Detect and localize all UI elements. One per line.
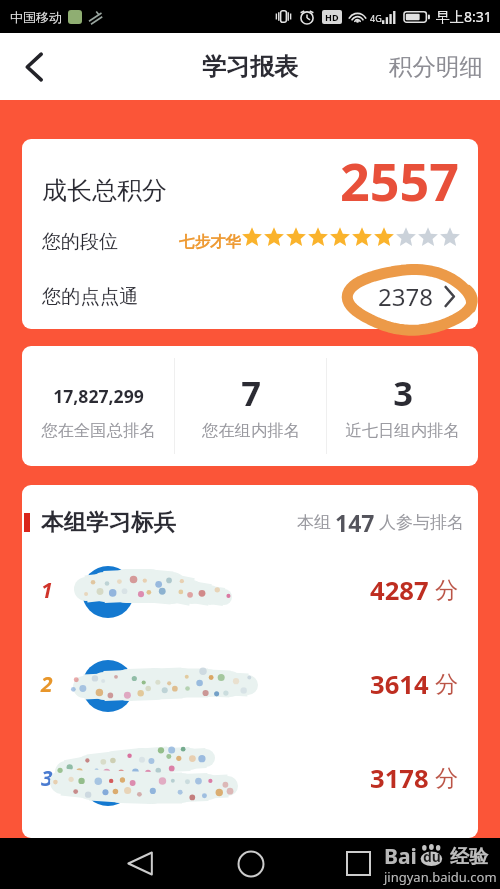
staticText: 3 — [393, 369, 413, 416]
staticText: 近七日组内排名 — [345, 420, 460, 441]
staticText: jingyan.baidu.com — [384, 868, 497, 886]
staticText: 本组学习标兵 — [41, 508, 176, 536]
staticText: 早上8:31 — [436, 7, 492, 26]
staticText: 3178 — [370, 761, 429, 796]
staticText: 2378 — [378, 280, 433, 313]
staticText: 人参与排名 — [379, 512, 464, 533]
button[interactable]: Recents — [331, 838, 385, 889]
staticText: du — [423, 847, 441, 866]
staticText: 4287 — [370, 573, 429, 608]
staticText: 经验 — [450, 845, 488, 869]
button[interactable]: Home — [224, 838, 278, 889]
staticText: 2557 — [340, 145, 459, 216]
staticText: 七步才华 — [179, 232, 241, 252]
staticText: 7 — [241, 369, 261, 416]
staticText: 学习报表 — [202, 52, 298, 82]
staticText: 您的段位 — [42, 230, 118, 254]
staticText: 本组 — [297, 512, 331, 533]
staticText: 分 — [435, 764, 458, 793]
button[interactable]: 3 — [22, 731, 478, 825]
staticText: 3 — [41, 764, 53, 793]
staticText: Bai — [384, 842, 417, 871]
staticText: 分 — [435, 576, 458, 605]
staticText: 147 — [335, 507, 375, 538]
button[interactable]: 您的点点通 — [22, 267, 478, 325]
staticText: 您的点点通 — [42, 284, 139, 308]
button[interactable]: Back — [113, 838, 167, 889]
staticText: 17,827,299 — [53, 384, 144, 408]
button[interactable]: 2 — [22, 637, 478, 731]
button[interactable]: 积分明细 — [374, 38, 500, 96]
button[interactable]: Back — [0, 39, 56, 95]
staticText: 您在组内排名 — [202, 420, 300, 441]
button[interactable]: 1 — [22, 543, 478, 637]
staticText: 分 — [435, 670, 458, 699]
staticText: 成长总积分 — [42, 175, 167, 206]
staticText: 4G — [370, 12, 382, 24]
staticText: HD — [325, 11, 339, 23]
staticText: 1 — [41, 576, 53, 605]
staticText: 3614 — [370, 667, 429, 702]
staticText: 积分明细 — [389, 52, 483, 82]
staticText: 您在全国总排名 — [41, 420, 156, 441]
staticText: 中国移动 — [10, 9, 62, 25]
staticText: 2 — [41, 670, 53, 699]
